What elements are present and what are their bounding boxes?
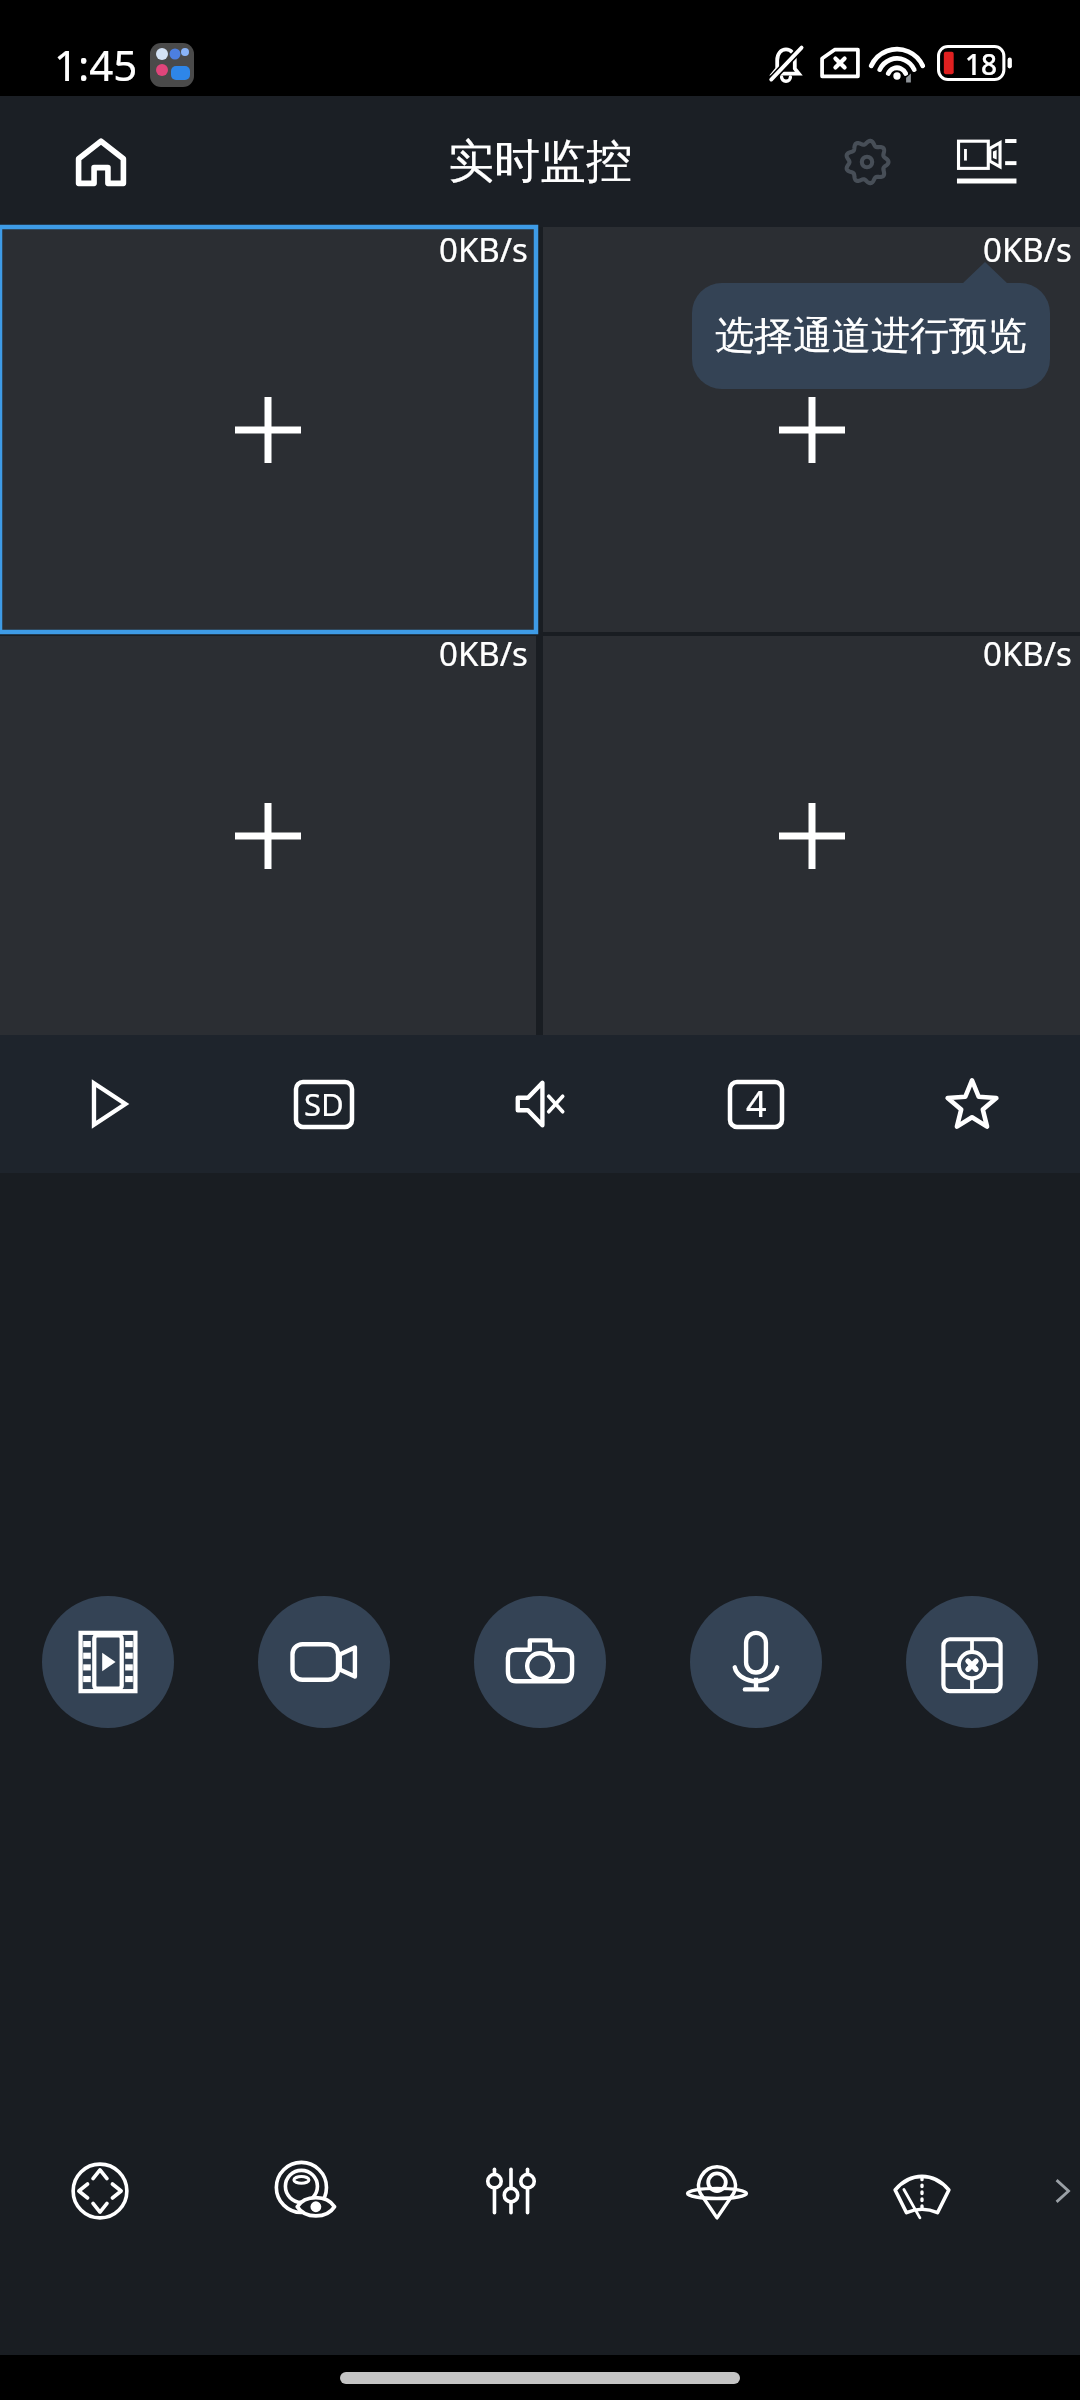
staticText: 选择通道进行预览 [715,311,1027,360]
button[interactable]: Channel list [941,116,1033,208]
staticText: 1:45 [54,36,138,93]
button[interactable]: Wiper [857,2126,987,2256]
staticText: 0KB/s [439,631,528,676]
staticText: SD [304,1083,344,1125]
button[interactable]: More tools [1033,2126,1080,2256]
button[interactable]: Image settings [446,2126,576,2256]
button[interactable]: PTZ control [35,2126,165,2256]
button[interactable]: Two-way talk [690,1596,822,1728]
button[interactable]: Favorite [864,1035,1080,1173]
button[interactable]: Play [0,1035,216,1173]
button[interactable]: Home [55,116,147,208]
button[interactable]: 0KB/s [0,227,536,632]
button[interactable]: Preset [239,2126,369,2256]
button[interactable]: Settings [821,116,913,208]
button[interactable]: Close all channels [906,1596,1038,1728]
staticText: 实时监控 [448,133,632,191]
staticText: 18 [965,45,998,81]
button[interactable]: 0KB/s [543,227,1080,632]
button[interactable]: Split 4 channels [648,1035,864,1173]
staticText: 0KB/s [983,227,1072,272]
button[interactable]: Record [258,1596,390,1728]
staticText: 0KB/s [983,631,1072,676]
button[interactable]: Mute [432,1035,648,1173]
button[interactable]: Playback [42,1596,174,1728]
staticText: 0KB/s [439,227,528,272]
button[interactable]: 0KB/s [543,636,1080,1035]
button[interactable]: Position [652,2126,782,2256]
button[interactable]: Snapshot [474,1596,606,1728]
button[interactable]: 0KB/s [0,636,536,1035]
button[interactable]: Stream quality SD [216,1035,432,1173]
staticText: 4 [746,1079,767,1128]
